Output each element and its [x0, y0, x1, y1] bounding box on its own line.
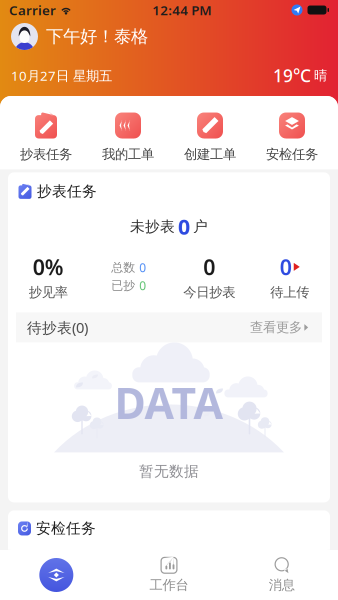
- staticText: 已抄: [111, 278, 135, 293]
- staticText: 抄见率: [29, 284, 68, 300]
- staticText: 我的工单: [102, 146, 154, 162]
- staticText: 消息: [269, 577, 295, 593]
- staticText: 下午好！泰格: [46, 26, 148, 47]
- staticText: 0: [139, 278, 146, 293]
- staticText: Carrier: [9, 1, 56, 19]
- staticText: 0%: [33, 253, 64, 281]
- staticText: 查看更多: [250, 319, 302, 336]
- staticText: 晴: [314, 67, 327, 84]
- staticText: 总数: [111, 260, 135, 275]
- button[interactable]: 扫一扫: [0, 550, 113, 600]
- staticText: 待抄表(0): [27, 318, 88, 337]
- staticText: 10月27日 星期五: [11, 67, 112, 84]
- staticText: 今日抄表: [183, 284, 235, 300]
- staticText: 抄表任务: [20, 146, 72, 162]
- staticText: 0: [139, 260, 146, 275]
- staticText: 未抄表: [130, 217, 175, 235]
- staticText: 暂无数据: [139, 462, 199, 480]
- button[interactable]: 我的工单: [87, 112, 169, 162]
- staticText: 待上传: [270, 284, 309, 300]
- staticText: 抄表任务: [37, 182, 97, 200]
- staticText: 12:44 PM: [152, 1, 211, 19]
- staticText: 工作台: [149, 577, 188, 593]
- staticText: 创建工单: [184, 146, 236, 162]
- button[interactable]: 查看更多: [250, 319, 311, 336]
- staticText: 0: [178, 212, 190, 241]
- button[interactable]: 工作台: [113, 550, 225, 600]
- button[interactable]: 抄表任务: [5, 112, 87, 162]
- button[interactable]: 消息: [225, 550, 338, 600]
- staticText: DATA: [114, 374, 223, 431]
- staticText: 安检任务: [36, 519, 96, 537]
- staticText: 户: [193, 217, 208, 235]
- button[interactable]: 安检任务: [251, 112, 333, 162]
- button[interactable]: 创建工单: [169, 112, 251, 162]
- staticText: 0: [280, 253, 292, 281]
- staticText: 19°C: [273, 64, 311, 87]
- staticText: 0: [203, 253, 215, 281]
- staticText: 安检任务: [266, 146, 318, 162]
